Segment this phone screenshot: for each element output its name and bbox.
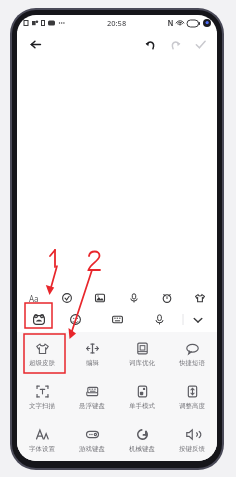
button[interactable]: 文字扫描: [17, 375, 67, 418]
button[interactable]: 调整高度: [167, 375, 217, 418]
button[interactable]: 按键反馈: [167, 418, 217, 461]
staticText: 超级皮肤: [29, 359, 55, 367]
button[interactable]: Correct: [56, 288, 78, 307]
staticText: Aa: [29, 293, 39, 303]
button[interactable]: 游戏键盘: [67, 418, 117, 461]
staticText: 悬浮键盘: [79, 402, 105, 410]
button[interactable]: Image: [89, 288, 111, 307]
button[interactable]: Microphone: [139, 307, 179, 332]
button[interactable]: Confirm: [191, 35, 209, 53]
staticText: 字体设置: [29, 445, 55, 453]
button[interactable]: Clock: [156, 288, 178, 307]
button[interactable]: Skin: [189, 288, 211, 307]
button[interactable]: 超级皮肤: [17, 332, 67, 375]
staticText: 20:58: [107, 18, 127, 28]
staticText: 快捷短语: [179, 359, 205, 367]
button[interactable]: Undo: [141, 35, 159, 53]
button[interactable]: 单手模式: [117, 375, 167, 418]
staticText: 词库优化: [129, 359, 155, 367]
button[interactable]: 机械键盘: [117, 418, 167, 461]
button[interactable]: 快捷短语: [167, 332, 217, 375]
staticText: 按键反馈: [179, 445, 205, 453]
button[interactable]: 字体设置: [17, 418, 67, 461]
button[interactable]: 编辑: [67, 332, 117, 375]
staticText: 编辑: [86, 359, 99, 367]
button[interactable]: Redo: [166, 35, 184, 53]
button[interactable]: Text style: [23, 288, 45, 307]
button[interactable]: Keyboard: [95, 307, 139, 332]
staticText: 机械键盘: [129, 445, 155, 453]
button[interactable]: 词库优化: [117, 332, 167, 375]
button[interactable]: Sticker: [23, 307, 55, 332]
button[interactable]: Emoji: [55, 307, 95, 332]
button[interactable]: 悬浮键盘: [67, 375, 117, 418]
staticText: 游戏键盘: [79, 445, 105, 453]
button[interactable]: Voice: [123, 288, 145, 307]
button[interactable]: Back: [25, 34, 45, 54]
button[interactable]: Collapse: [185, 307, 211, 332]
staticText: 单手模式: [129, 402, 155, 410]
staticText: 文字扫描: [29, 402, 55, 410]
staticText: 调整高度: [179, 402, 205, 410]
